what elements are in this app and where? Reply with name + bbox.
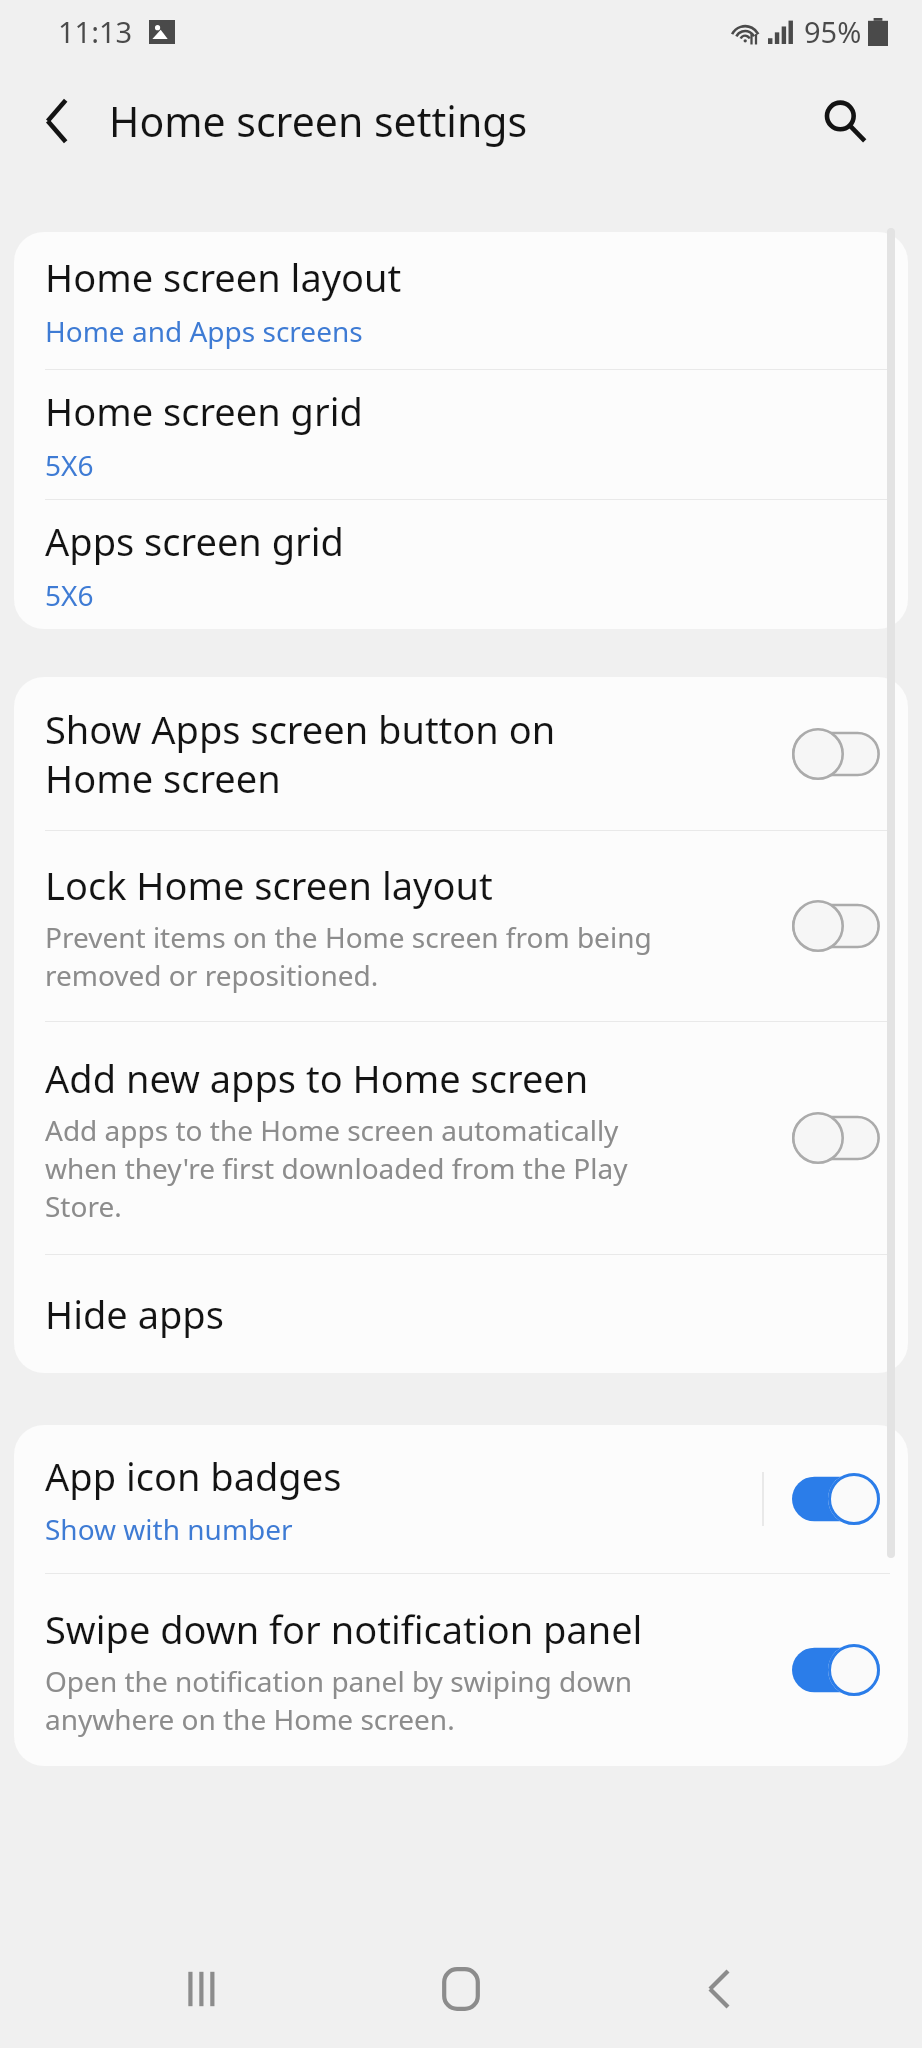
staticText: Apps screen grid: [45, 515, 344, 567]
staticText: App icon badges: [45, 1450, 342, 1502]
staticText: Lock Home screen layout: [45, 859, 493, 911]
staticText: Swipe down for notification panel: [45, 1603, 643, 1655]
button[interactable]: Lock Home screen layout: [14, 831, 908, 1021]
staticText: Show Apps screen button on Home screen: [45, 703, 556, 804]
staticText: Open the notification panel by swiping d…: [45, 1662, 632, 1738]
staticText: Add apps to the Home screen automaticall…: [45, 1111, 628, 1225]
button[interactable]: Search: [806, 83, 882, 159]
button[interactable]: Off: [788, 724, 884, 784]
button[interactable]: Recent apps: [148, 1934, 258, 2044]
staticText: Show with number: [45, 1510, 293, 1548]
staticText: 11:13: [58, 12, 133, 51]
staticText: Home screen settings: [109, 93, 528, 149]
button[interactable]: On: [788, 1640, 884, 1700]
button[interactable]: App icon badges: [14, 1425, 908, 1573]
staticText: 5X6: [45, 576, 94, 614]
button[interactable]: Home screen grid: [14, 370, 908, 499]
button[interactable]: Show Apps screen button on Home screen: [14, 677, 908, 830]
button[interactable]: Off: [788, 896, 884, 956]
button[interactable]: Hide apps: [14, 1255, 908, 1373]
staticText: Home and Apps screens: [45, 312, 363, 350]
staticText: Hide apps: [45, 1288, 224, 1340]
button[interactable]: Back: [664, 1934, 774, 2044]
staticText: Home screen layout: [45, 251, 402, 303]
button[interactable]: Swipe down for notification panel: [14, 1574, 908, 1766]
button[interactable]: On: [788, 1469, 884, 1529]
staticText: 5X6: [45, 446, 94, 484]
button[interactable]: Home: [406, 1934, 516, 2044]
staticText: Prevent items on the Home screen from be…: [45, 918, 652, 994]
staticText: 95%: [804, 12, 862, 51]
button[interactable]: Add new apps to Home screen: [14, 1022, 908, 1254]
button[interactable]: Off: [788, 1108, 884, 1168]
staticText: Home screen grid: [45, 385, 363, 437]
staticText: Add new apps to Home screen: [45, 1052, 589, 1104]
button[interactable]: Navigate up: [18, 81, 98, 161]
button[interactable]: Apps screen grid: [14, 500, 908, 629]
button[interactable]: Home screen layout: [14, 232, 908, 369]
